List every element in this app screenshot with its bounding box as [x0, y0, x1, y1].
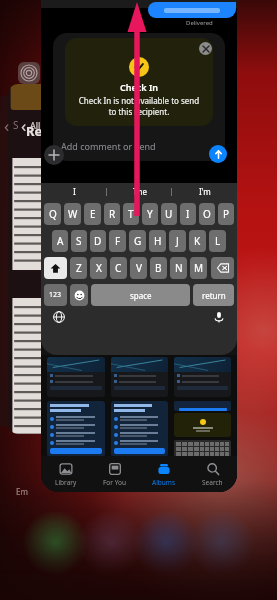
button[interactable]: I'm	[172, 183, 237, 200]
staticText: I	[73, 186, 76, 197]
staticText: E	[90, 207, 96, 221]
button[interactable]: M	[190, 257, 207, 279]
staticText: A	[57, 234, 64, 248]
staticText: Delivered	[186, 19, 213, 27]
staticText: R	[109, 207, 116, 221]
button[interactable]: Library	[41, 456, 90, 492]
staticText: Z	[76, 261, 82, 275]
button[interactable]: P	[218, 203, 234, 225]
staticText: All	[30, 119, 41, 131]
staticText: ‹	[4, 114, 10, 137]
button[interactable]: N	[170, 257, 187, 279]
staticText: Search	[202, 478, 223, 487]
button[interactable]: space	[91, 284, 190, 306]
button[interactable]: Backspace	[211, 257, 234, 279]
button[interactable]: G	[129, 230, 146, 252]
staticText: space	[130, 290, 152, 301]
button[interactable]: Shift	[44, 257, 67, 279]
button[interactable]: I	[41, 183, 107, 200]
staticText: Re	[26, 122, 43, 140]
staticText: F	[115, 234, 121, 248]
button[interactable]: Close	[199, 42, 212, 55]
staticText: I	[186, 207, 190, 221]
button[interactable]: D	[90, 230, 106, 252]
button[interactable]: F	[109, 230, 126, 252]
button[interactable]: V	[130, 257, 147, 279]
button[interactable]: Z	[70, 257, 87, 279]
staticText: T	[128, 207, 134, 221]
staticText: W	[68, 207, 78, 221]
button[interactable]: C	[110, 257, 127, 279]
staticText: Check In	[120, 81, 158, 93]
button[interactable]: Send	[209, 145, 227, 163]
button[interactable]: I	[180, 203, 196, 225]
button[interactable]: return	[193, 284, 234, 306]
button[interactable]: H	[149, 230, 166, 252]
staticText: S	[13, 118, 19, 132]
button[interactable]: O	[199, 203, 215, 225]
staticText: H	[154, 234, 162, 248]
staticText: V	[136, 261, 142, 275]
button[interactable]: Add attachment	[44, 145, 64, 165]
button[interactable]: Dictate	[211, 309, 227, 325]
staticText: N	[175, 261, 183, 275]
button[interactable]: Search	[188, 456, 237, 492]
staticText: The	[133, 186, 147, 197]
staticText: K	[194, 234, 201, 248]
staticText: Em	[16, 486, 28, 497]
button[interactable]: Albums	[139, 456, 188, 492]
button[interactable]: J	[169, 230, 186, 252]
staticText: L	[215, 234, 221, 248]
staticText: Albums	[152, 478, 176, 487]
button[interactable]: Emoji	[70, 284, 88, 306]
staticText: For You	[103, 478, 126, 487]
staticText: Check In is not available to send to thi…	[65, 95, 213, 117]
staticText: B	[155, 261, 162, 275]
staticText: S	[76, 234, 82, 248]
button[interactable]: 123	[44, 284, 67, 306]
button[interactable]: X	[90, 257, 107, 279]
staticText: D	[94, 234, 102, 248]
staticText: Add comment or Send	[61, 140, 156, 152]
button[interactable]: B	[150, 257, 167, 279]
button[interactable]: For You	[90, 456, 139, 492]
staticText: ‹	[21, 114, 27, 137]
staticText: Y	[147, 207, 153, 221]
button[interactable]: A	[52, 230, 68, 252]
staticText: M	[194, 261, 204, 275]
button[interactable]: K	[189, 230, 206, 252]
staticText: I'm	[199, 186, 211, 197]
button[interactable]: E	[84, 203, 101, 225]
button[interactable]: T	[123, 203, 139, 225]
button[interactable]: U	[161, 203, 177, 225]
staticText: Library	[55, 478, 77, 487]
button[interactable]: S	[71, 230, 87, 252]
staticText: return	[202, 290, 226, 301]
staticText: O	[203, 207, 211, 221]
staticText: Q	[49, 207, 57, 221]
button[interactable]: The	[107, 183, 172, 200]
button[interactable]: L	[209, 230, 226, 252]
button[interactable]: Y	[142, 203, 158, 225]
button[interactable]: Change keyboard	[51, 309, 67, 325]
staticText: P	[223, 207, 230, 221]
staticText: X	[96, 261, 102, 275]
staticText: 123	[49, 290, 62, 300]
staticText: J	[176, 234, 179, 248]
button[interactable]: R	[104, 203, 120, 225]
button[interactable]: Q	[44, 203, 61, 225]
staticText: G	[134, 234, 142, 248]
staticText: C	[115, 261, 122, 275]
button[interactable]: W	[64, 203, 81, 225]
staticText: U	[165, 207, 173, 221]
